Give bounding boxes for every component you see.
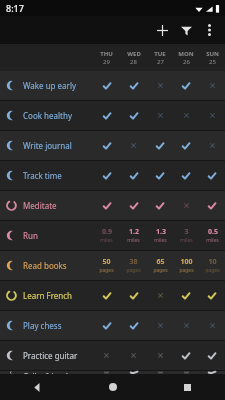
staticText: miles — [127, 237, 140, 244]
staticText: miles — [206, 237, 219, 244]
staticText: Write journal — [23, 140, 72, 151]
staticText: pages — [179, 267, 194, 274]
staticText: SUN — [206, 50, 219, 58]
button[interactable]: Track time — [0, 161, 225, 190]
staticText: pages — [205, 267, 220, 274]
button[interactable]: Read books — [0, 251, 225, 280]
button[interactable]: Home — [75, 374, 150, 400]
button[interactable]: Add habit — [150, 18, 174, 42]
staticText: 10 — [208, 257, 217, 267]
staticText: Wake up early — [23, 80, 77, 91]
staticText: pages — [99, 267, 114, 274]
button[interactable]: Back — [0, 374, 75, 400]
staticText: Track time — [23, 170, 62, 181]
staticText: Read books — [23, 260, 67, 271]
staticText: MON — [178, 50, 194, 58]
staticText: 38 — [129, 257, 138, 267]
button[interactable]: Call a friend — [0, 371, 225, 374]
staticText: 27 — [157, 58, 164, 66]
staticText: Learn French — [23, 290, 73, 301]
button[interactable]: Meditate — [0, 191, 225, 220]
button[interactable]: More options — [198, 19, 220, 41]
staticText: 8:17 — [6, 2, 24, 14]
staticText: 3 — [184, 227, 189, 237]
staticText: 50 — [102, 257, 111, 267]
staticText: 0.5 — [208, 227, 218, 237]
staticText: 28 — [130, 58, 137, 66]
staticText: pages — [153, 267, 168, 274]
staticText: Cook healthy dinner — [23, 110, 93, 121]
button[interactable]: Wake up early — [0, 71, 225, 100]
staticText: Practice guitar — [23, 350, 78, 361]
button[interactable]: Learn French — [0, 281, 225, 310]
staticText: TUE — [154, 50, 166, 58]
button[interactable]: Cook healthy dinner — [0, 101, 225, 130]
staticText: THU — [100, 50, 113, 58]
staticText: Play chess — [23, 320, 62, 331]
staticText: 25 — [209, 58, 216, 66]
staticText: Meditate — [23, 200, 57, 211]
staticText: Call a friend — [23, 371, 68, 374]
staticText: pages — [126, 267, 141, 274]
staticText: miles — [154, 237, 167, 244]
button[interactable]: Recent apps — [150, 374, 225, 400]
staticText: WED — [127, 50, 141, 58]
button[interactable]: Write journal — [0, 131, 225, 160]
staticText: 100 — [180, 257, 193, 267]
staticText: 26 — [183, 58, 190, 66]
button[interactable]: Practice guitar — [0, 341, 225, 370]
button[interactable]: Run — [0, 221, 225, 250]
button[interactable]: Play chess — [0, 311, 225, 340]
staticText: miles — [180, 237, 193, 244]
staticText: 65 — [156, 257, 165, 267]
staticText: 1.2 — [129, 227, 139, 237]
staticText: 1.3 — [156, 227, 166, 237]
button[interactable]: Filter — [174, 18, 198, 42]
staticText: 29 — [103, 58, 110, 66]
staticText: miles — [100, 237, 113, 244]
staticText: 0.9 — [102, 227, 112, 237]
staticText: Run — [23, 230, 38, 241]
